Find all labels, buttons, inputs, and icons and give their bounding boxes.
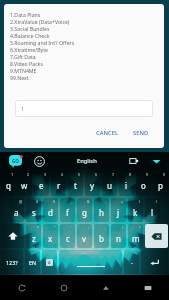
staticText: x: [48, 233, 53, 244]
staticText: 7.Gift Data: [10, 53, 36, 60]
button[interactable]: English: [50, 153, 123, 169]
button[interactable]: Enter: [141, 250, 168, 274]
staticText: d: [48, 207, 53, 218]
button[interactable]: Home: [43, 275, 85, 300]
staticText: 5.Roaming and Int'l Offers: [10, 39, 75, 46]
button[interactable]: !: [111, 224, 126, 248]
staticText: 6: [95, 172, 98, 177]
staticText: ': [71, 225, 72, 230]
button[interactable]: ): [145, 198, 160, 222]
staticText: b: [99, 233, 104, 244]
staticText: t: [74, 180, 77, 191]
staticText: r: [57, 180, 61, 191]
button[interactable]: &: [77, 198, 92, 222]
button[interactable]: Emoji: [30, 153, 48, 169]
staticText: w: [21, 180, 28, 191]
staticText: 7: [112, 172, 115, 177]
staticText: p: [158, 180, 163, 191]
staticText: +: [121, 199, 124, 204]
button[interactable]: GO Keyboard menu: [0, 152, 30, 170]
staticText: 9: [146, 172, 149, 177]
button[interactable]: ;: [94, 224, 109, 248]
staticText: e: [39, 180, 44, 191]
button[interactable]: 9: [136, 171, 151, 196]
button[interactable]: :: [77, 224, 92, 248]
staticText: @: [19, 199, 23, 204]
button[interactable]: 6: [85, 171, 100, 196]
button[interactable]: @: [9, 198, 24, 222]
button[interactable]: Hide keyboard: [143, 152, 169, 170]
staticText: &: [87, 199, 90, 204]
button[interactable]: $: [43, 198, 58, 222]
staticText: 4.Balance Check: [10, 32, 50, 39]
staticText: c: [66, 233, 70, 244]
button[interactable]: (: [128, 198, 143, 222]
staticText: 3.Social Bundles: [10, 25, 50, 32]
staticText: 2.XtraValue (Data+Voice): [10, 18, 70, 25]
staticText: $: [53, 199, 56, 204]
staticText: ;: [105, 225, 106, 230]
staticText: ": [54, 225, 56, 230]
staticText: *: [37, 225, 39, 230]
staticText: CANCEL: [96, 129, 118, 137]
staticText: j: [117, 207, 120, 218]
staticText: ?: [139, 225, 141, 230]
button[interactable]: 3: [34, 171, 49, 196]
button[interactable]: 5: [68, 171, 83, 196]
button[interactable]: CANCEL: [91, 126, 123, 140]
staticText: 8.Video Packs: [10, 60, 43, 67]
staticText: y: [90, 180, 95, 191]
button[interactable]: ': [60, 224, 75, 248]
staticText: 99.Next: [10, 74, 29, 81]
staticText: f: [66, 207, 69, 218]
button[interactable]: Back: [0, 275, 43, 300]
staticText: a: [14, 207, 19, 218]
button[interactable]: EN: [25, 250, 40, 274]
staticText: !: [122, 225, 123, 230]
staticText: s: [32, 207, 36, 218]
staticText: 3: [44, 172, 47, 177]
button[interactable]: ?: [128, 224, 143, 248]
staticText: m: [132, 233, 140, 244]
button[interactable]: 8: [119, 171, 134, 196]
button[interactable]: Stickers: [42, 250, 57, 274]
staticText: 1: [21, 105, 24, 112]
staticText: o: [141, 180, 146, 191]
button[interactable]: Space: [59, 250, 122, 274]
staticText: :: [88, 225, 89, 230]
staticText: 6.Xtratime/Byte: [10, 46, 48, 53]
staticText: SEND: [133, 129, 149, 137]
staticText: _: [71, 199, 73, 204]
button[interactable]: Clipboard: [125, 153, 143, 169]
button[interactable]: *: [26, 224, 41, 248]
button[interactable]: #: [26, 198, 41, 222]
button[interactable]: 1: [15, 100, 153, 117]
button[interactable]: 0: [153, 171, 168, 196]
staticText: 5: [78, 172, 81, 177]
button[interactable]: .: [124, 250, 139, 274]
button[interactable]: Recents: [85, 275, 127, 300]
button[interactable]: 123?: [1, 250, 23, 274]
button[interactable]: _: [60, 198, 75, 222]
staticText: 0: [163, 172, 166, 177]
button[interactable]: 1: [1, 171, 15, 196]
staticText: n: [116, 233, 121, 244]
staticText: k: [133, 207, 138, 218]
button[interactable]: SEND: [128, 126, 154, 140]
staticText: 1.Data Plans: [10, 11, 41, 18]
staticText: u: [107, 180, 112, 191]
button[interactable]: Switch keyboard: [127, 275, 169, 300]
staticText: (: [139, 199, 141, 204]
button[interactable]: 2: [17, 171, 32, 196]
button[interactable]: ": [43, 224, 58, 248]
button[interactable]: Backspace: [145, 224, 168, 248]
staticText: q: [6, 180, 11, 191]
staticText: 123?: [6, 259, 18, 266]
button[interactable]: 7: [102, 171, 117, 196]
staticText: h: [99, 207, 104, 218]
button[interactable]: +: [111, 198, 126, 222]
button[interactable]: 4: [51, 171, 66, 196]
staticText: l: [151, 207, 154, 218]
button[interactable]: Shift: [1, 224, 24, 248]
button[interactable]: -: [94, 198, 109, 222]
